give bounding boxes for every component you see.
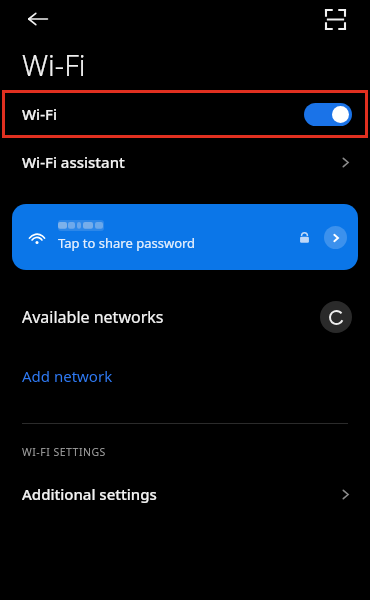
staticText: Tap to share password — [58, 234, 196, 252]
button[interactable]: Network details — [324, 226, 347, 249]
button[interactable]: Tap to share password — [12, 204, 358, 270]
staticText: Add network — [22, 366, 113, 386]
button[interactable]: Scan QR code — [317, 1, 353, 37]
button[interactable]: Back — [20, 1, 56, 37]
staticText: Available networks — [22, 306, 164, 328]
button[interactable]: Additional settings — [0, 473, 370, 515]
staticText: Additional settings — [22, 484, 157, 504]
button[interactable]: Wi-Fi on — [304, 103, 352, 126]
staticText: Wi-Fi assistant — [22, 152, 125, 172]
staticText: WI-FI SETTINGS — [22, 445, 106, 459]
button[interactable]: Wi-Fi assistant — [0, 138, 370, 186]
button[interactable]: Refresh networks — [320, 301, 352, 333]
button[interactable]: Wi-Fi — [2, 90, 368, 138]
button[interactable]: Add network — [0, 356, 370, 396]
staticText: Wi-Fi — [22, 45, 86, 84]
staticText: Wi-Fi — [22, 104, 57, 124]
